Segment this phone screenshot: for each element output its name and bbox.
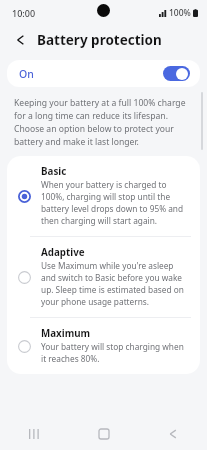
staticText: 10:00 [12, 7, 36, 19]
button[interactable]: Basic [7, 156, 200, 236]
staticText: Keeping your battery at a full 100% char… [14, 96, 193, 148]
staticText: Use Maximum while you're asleep and swit… [41, 260, 190, 308]
staticText: Adaptive [41, 246, 85, 259]
button[interactable]: Back [138, 418, 207, 450]
button[interactable]: Recent apps [0, 418, 69, 450]
staticText: Maximum [41, 327, 91, 340]
staticText: Battery protection [37, 31, 162, 49]
staticText: Your battery will stop charging when it … [41, 341, 190, 365]
staticText: When your battery is charged to 100%, ch… [41, 179, 190, 227]
button[interactable]: Home [69, 418, 138, 450]
staticText: Basic [41, 165, 67, 178]
button[interactable]: Adaptive [7, 237, 200, 317]
button[interactable]: On [7, 60, 200, 87]
staticText: On [19, 67, 34, 81]
button[interactable]: Maximum [7, 318, 200, 374]
staticText: 100% [169, 7, 191, 19]
button[interactable]: Navigate up [10, 30, 30, 50]
